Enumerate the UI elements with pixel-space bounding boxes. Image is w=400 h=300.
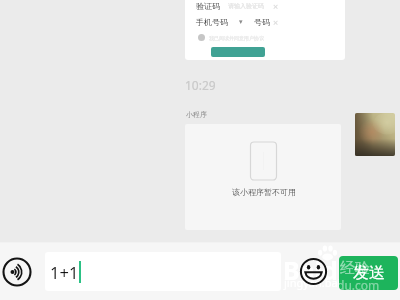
button[interactable]: 该小程序暂不可用 [185,124,341,230]
staticText: 10:29 [185,77,216,93]
staticText: jingyan.baidu.com [284,275,380,290]
button[interactable]: Emoji [298,256,329,287]
button[interactable]: 验证码 [185,0,345,60]
staticText: 我已阅读并同意用户协议 [209,35,264,41]
staticText: 发送 [353,263,385,283]
staticText: 号码 [254,17,270,27]
staticText: × [273,16,279,28]
staticText: 请输入验证码 [228,2,264,10]
staticText: du.com [339,277,380,290]
staticText: 小程序 [186,110,207,119]
staticText: ▾ [239,18,243,26]
staticText: 手机号码 [196,17,228,27]
button[interactable]: Avatar [355,113,395,156]
staticText: 1+1 [50,261,79,283]
staticText: × [273,0,279,12]
button[interactable] [211,47,265,57]
button[interactable]: Voice input [1,256,33,288]
button[interactable]: 1+1 [45,252,281,291]
staticText: 经验 [340,259,370,278]
button[interactable]: 经验 [339,256,398,290]
staticText: 该小程序暂不可用 [232,187,296,197]
staticText: Baidu [283,253,355,287]
staticText: 验证码 [196,1,220,11]
